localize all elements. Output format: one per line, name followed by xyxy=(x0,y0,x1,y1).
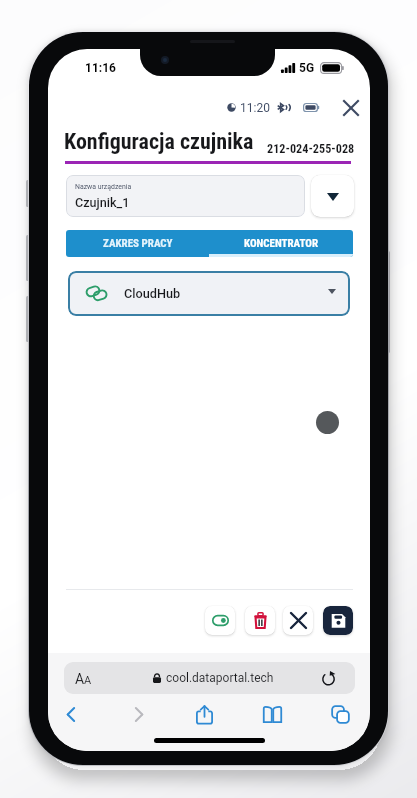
staticText: 212-024-255-028 xyxy=(267,142,355,156)
staticText: Konfiguracja czujnika xyxy=(64,129,254,155)
button[interactable]: Tabs xyxy=(323,697,357,731)
button[interactable]: Open list xyxy=(311,175,354,217)
button[interactable]: Save xyxy=(323,606,353,635)
button[interactable]: CloudHub xyxy=(68,271,350,316)
button[interactable]: Back xyxy=(54,697,88,731)
button[interactable]: Close xyxy=(338,95,364,121)
button[interactable]: Text size xyxy=(64,662,118,694)
button[interactable]: KONCENTRATOR xyxy=(209,230,353,257)
button[interactable]: Cancel xyxy=(283,606,313,635)
button[interactable]: Forward xyxy=(121,697,155,731)
staticText: Nazwa urządzenia xyxy=(75,183,132,191)
button[interactable]: ZAKRES PRACY xyxy=(66,230,209,257)
button[interactable]: Delete xyxy=(245,606,275,635)
button[interactable]: Nazwa urządzenia xyxy=(66,175,305,217)
staticText: ZAKRES PRACY xyxy=(103,237,173,250)
staticText: 11:16 xyxy=(85,61,116,75)
staticText: A xyxy=(84,674,92,687)
button[interactable]: Toggle xyxy=(205,606,235,635)
staticText: KONCENTRATOR xyxy=(244,237,319,250)
button[interactable]: Share xyxy=(187,697,221,731)
staticText: 5G xyxy=(299,61,315,75)
staticText: A xyxy=(75,671,85,687)
staticText: 11:20 xyxy=(240,101,270,115)
button[interactable]: Reload xyxy=(301,662,355,694)
staticText: CloudHub xyxy=(124,286,181,301)
staticText: cool.dataportal.tech xyxy=(166,671,274,685)
button[interactable]: Bookmarks xyxy=(255,697,289,731)
staticText: Czujnik_1 xyxy=(75,195,130,210)
